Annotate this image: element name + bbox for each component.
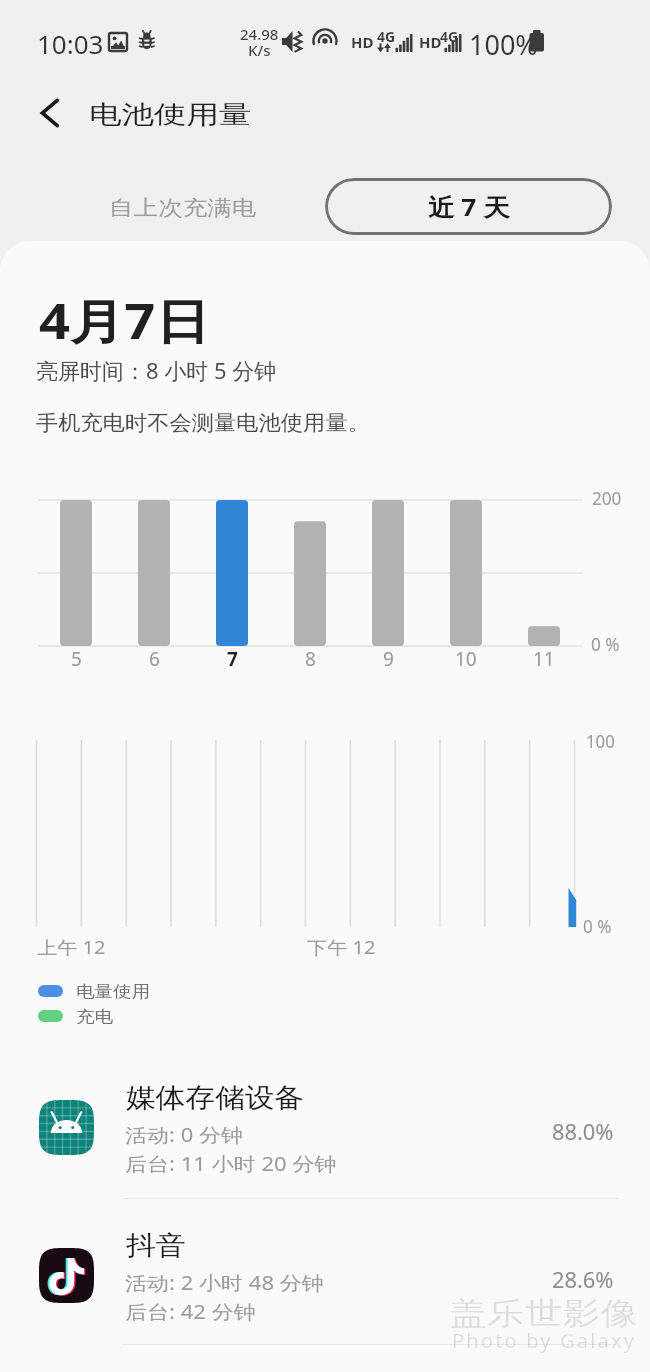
staticText: 10:03: [37, 26, 104, 61]
button[interactable]: 自上次充满电: [86, 178, 286, 238]
button[interactable]: 近 7 天: [325, 178, 612, 235]
staticText: 24.98: [240, 24, 279, 44]
staticText: 6: [149, 646, 160, 672]
staticText: 近 7 天: [428, 190, 510, 223]
staticText: 媒体存储设备: [126, 1081, 304, 1115]
staticText: 下午 12: [307, 935, 376, 960]
staticText: 4G: [377, 27, 396, 46]
staticText: K/s: [248, 40, 271, 60]
staticText: 11: [533, 646, 555, 672]
staticText: 0 %: [583, 914, 611, 939]
staticText: 盖乐世影像: [449, 1294, 638, 1333]
button[interactable]: 抖音: [0, 1210, 650, 1356]
staticText: HD: [351, 32, 374, 52]
staticText: 电量使用: [76, 982, 150, 1002]
staticText: Photo by Galaxy: [450, 1326, 634, 1352]
staticText: 后台: 11 小时 20 分钟: [125, 1151, 337, 1177]
staticText: 电池使用量: [89, 99, 251, 130]
staticText: 8: [305, 646, 316, 672]
staticText: 88.0%: [552, 1118, 614, 1147]
staticText: 盖乐世影像: [447, 1292, 636, 1331]
staticText: 手机充电时不会测量电池使用量。: [36, 410, 370, 436]
staticText: 28.6%: [552, 1266, 614, 1295]
staticText: 100: [586, 729, 615, 754]
staticText: 5: [71, 646, 82, 672]
staticText: 上午 12: [37, 935, 106, 960]
staticText: 0 %: [591, 632, 619, 657]
button[interactable]: 媒体存储设备: [0, 1062, 650, 1208]
staticText: 亮屏时间：8 小时 5 分钟: [36, 355, 277, 385]
button[interactable]: Back: [23, 86, 75, 138]
staticText: 100%: [469, 26, 538, 63]
staticText: 自上次充满电: [109, 195, 256, 221]
staticText: 200: [592, 486, 621, 511]
staticText: 充电: [76, 1007, 113, 1027]
staticText: 7: [227, 646, 238, 672]
staticText: 活动: 2 小时 48 分钟: [125, 1270, 324, 1296]
staticText: 9: [383, 646, 394, 672]
staticText: 4G: [440, 27, 459, 46]
staticText: Photo by Galaxy: [452, 1328, 636, 1354]
staticText: 抖音: [126, 1229, 185, 1263]
staticText: 4月7日: [39, 288, 210, 354]
staticText: 活动: 0 分钟: [125, 1122, 243, 1148]
staticText: 10: [455, 646, 477, 672]
staticText: HD: [419, 32, 442, 52]
staticText: 后台: 42 分钟: [125, 1299, 256, 1325]
